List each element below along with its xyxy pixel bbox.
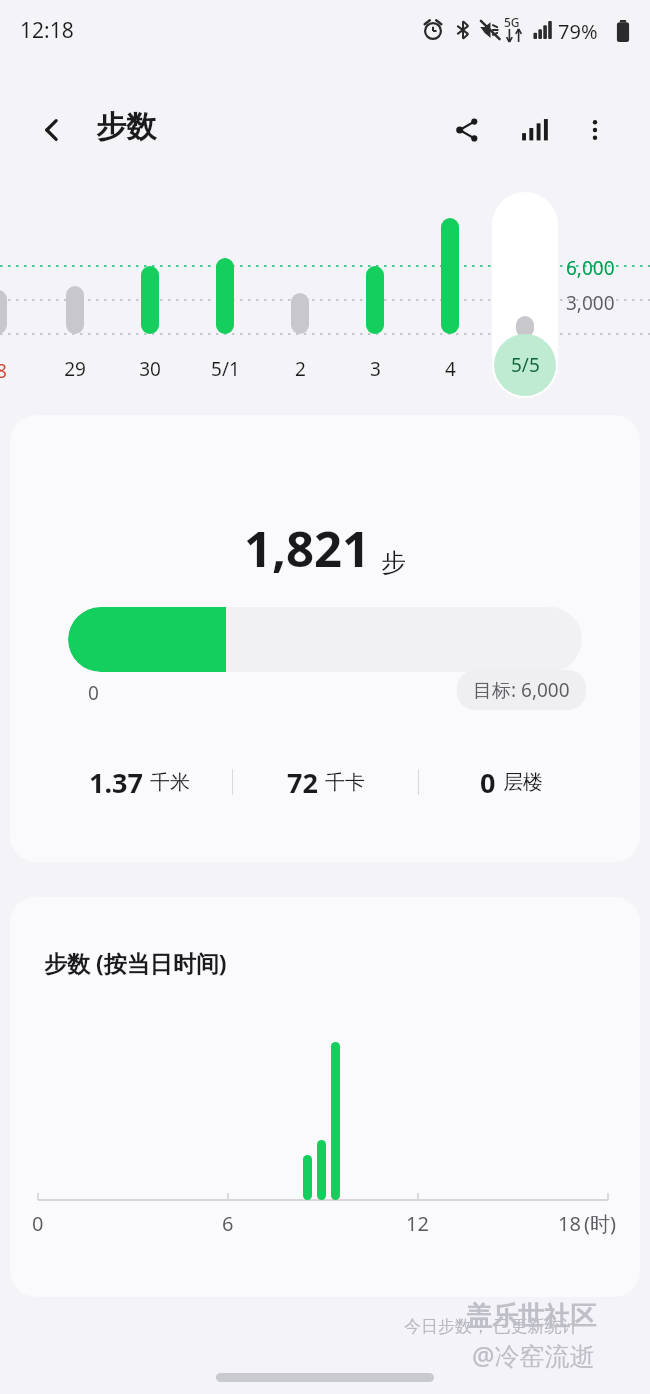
staticText: 0 (88, 680, 99, 706)
button[interactable]: 3 (349, 352, 401, 386)
button[interactable]: More options (567, 102, 623, 158)
button[interactable]: Chart (505, 102, 561, 158)
staticText: 18 (558, 1210, 581, 1237)
staticText: 79% (558, 18, 598, 45)
button[interactable]: 2 (274, 352, 326, 386)
button[interactable]: 1.37 (46, 760, 232, 804)
button[interactable]: 5/5 (492, 192, 558, 398)
staticText: 5G (504, 14, 520, 30)
button[interactable]: 0 (419, 760, 604, 804)
button[interactable]: 29 (49, 352, 101, 386)
button[interactable] (68, 607, 582, 672)
staticText: 目标: 6,000 (473, 677, 570, 703)
staticText: 5/5 (511, 352, 540, 378)
staticText: 1,821 (244, 515, 371, 582)
button[interactable]: 4 (424, 352, 476, 386)
staticText: 0 (480, 764, 496, 801)
staticText: 步 (381, 547, 406, 578)
staticText: 12 (406, 1210, 429, 1237)
staticText: 千米 (150, 770, 190, 795)
staticText: 8 (0, 358, 7, 384)
staticText: 步数 (按当日时间) (44, 947, 227, 978)
button[interactable]: 5/1 (199, 352, 251, 386)
staticText: 29 (64, 356, 86, 382)
button[interactable]: Share (439, 102, 495, 158)
staticText: 0 (32, 1210, 44, 1237)
button[interactable]: 30 (124, 352, 176, 386)
staticText: 6 (222, 1210, 234, 1237)
staticText: 4 (445, 356, 456, 382)
staticText: 盖乐世社区 (466, 1300, 596, 1333)
staticText: 3 (370, 356, 381, 382)
button[interactable]: Back (24, 102, 80, 158)
staticText: 千卡 (325, 770, 365, 795)
staticText: 5/1 (211, 356, 240, 382)
staticText: 1.37 (89, 764, 143, 801)
button[interactable]: 72 (233, 760, 418, 804)
staticText: 步数 (96, 108, 156, 146)
staticText: 6,000 (566, 255, 615, 281)
button[interactable]: 目标: 6,000 (457, 670, 586, 710)
staticText: 层楼 (503, 770, 543, 795)
staticText: (时) (584, 1210, 616, 1237)
staticText: 12:18 (20, 16, 74, 45)
staticText: 今日步数， 已更新统计 (404, 1314, 579, 1337)
staticText: 30 (139, 356, 161, 382)
staticText: 72 (287, 764, 318, 801)
staticText: @冷窑流逝 (472, 1338, 595, 1372)
staticText: 3,000 (566, 290, 615, 316)
staticText: 2 (295, 356, 306, 382)
